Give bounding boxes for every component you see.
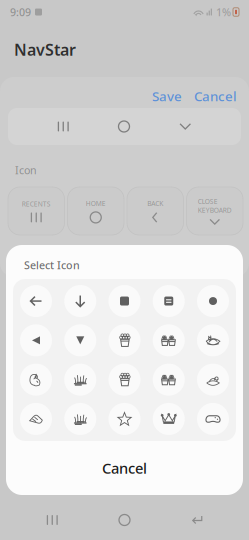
button[interactable]: Star bbox=[108, 403, 140, 435]
staticText: 1% bbox=[216, 5, 231, 19]
button[interactable]: Grass bbox=[64, 364, 96, 396]
button[interactable]: Crown bbox=[153, 403, 185, 435]
staticText: Cancel bbox=[194, 87, 237, 105]
button[interactable]: Popcorn two bbox=[108, 364, 140, 396]
staticText: Save bbox=[152, 87, 182, 105]
button[interactable]: Popcorn pair two bbox=[153, 364, 185, 396]
button[interactable]: Home bbox=[104, 500, 144, 540]
button[interactable]: Back bbox=[177, 500, 217, 540]
button[interactable]: RECENTS bbox=[8, 187, 64, 235]
button[interactable]: Square bbox=[108, 285, 140, 317]
button[interactable]: Grass two bbox=[64, 403, 96, 435]
button[interactable]: Shell bbox=[197, 324, 229, 356]
button[interactable]: Cancel bbox=[194, 87, 237, 105]
button[interactable]: Recents bbox=[32, 500, 72, 540]
button[interactable]: Cancel bbox=[6, 441, 243, 495]
button[interactable]: Play left bbox=[20, 324, 52, 356]
button[interactable]: Squirrel bbox=[20, 364, 52, 396]
button[interactable]: Sleeping dog bbox=[197, 364, 229, 396]
button[interactable]: Lined square bbox=[153, 285, 185, 317]
staticText: NavStar bbox=[14, 39, 76, 60]
button[interactable]: Shoe bbox=[20, 403, 52, 435]
staticText: CLOSE KEYBOARD bbox=[198, 197, 232, 215]
button[interactable]: Down arrow bbox=[64, 285, 96, 317]
button[interactable]: CLOSE KEYBOARD bbox=[186, 187, 243, 235]
button[interactable]: HOME bbox=[67, 187, 124, 235]
button[interactable]: Bin bbox=[108, 324, 140, 356]
button[interactable]: Save bbox=[152, 87, 182, 105]
staticText: Select Icon bbox=[24, 258, 80, 272]
staticText: Cancel bbox=[102, 458, 147, 478]
staticText: Icon bbox=[15, 163, 37, 177]
button[interactable]: Dot bbox=[197, 285, 229, 317]
button[interactable]: Gifts bbox=[153, 324, 185, 356]
button[interactable]: Play down bbox=[64, 324, 96, 356]
button[interactable]: Back arrow bbox=[20, 285, 52, 317]
staticText: BACK bbox=[147, 199, 163, 208]
button[interactable]: Game controller bbox=[197, 403, 229, 435]
staticText: RECENTS bbox=[22, 200, 51, 208]
staticText: 9:09 bbox=[10, 5, 31, 19]
button[interactable]: BACK bbox=[127, 187, 183, 235]
staticText: HOME bbox=[86, 199, 106, 208]
